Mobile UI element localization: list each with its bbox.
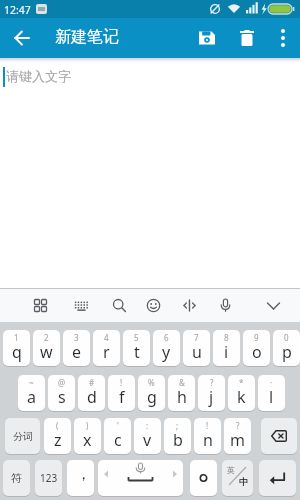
button[interactable]: 3	[63, 330, 90, 366]
button[interactable]	[140, 289, 166, 322]
button[interactable]: 1	[3, 330, 30, 366]
staticText: v	[143, 429, 152, 451]
button[interactable]: 4	[93, 330, 120, 366]
staticText: 5	[134, 332, 139, 343]
button[interactable]: 2	[33, 330, 60, 366]
staticText: 9	[254, 332, 259, 343]
staticText: o	[252, 341, 262, 363]
button[interactable]: %	[138, 375, 165, 411]
staticText: s	[58, 386, 66, 408]
button[interactable]: 8	[213, 330, 240, 366]
button[interactable]: 123	[35, 460, 62, 496]
staticText: *	[239, 377, 244, 388]
button[interactable]: 0	[273, 330, 300, 366]
staticText: @	[58, 377, 66, 388]
staticText: c	[114, 429, 122, 451]
button[interactable]: ?	[224, 418, 251, 454]
button[interactable]: ~	[18, 375, 45, 411]
button[interactable]: :	[134, 418, 161, 454]
staticText: 中	[239, 476, 248, 487]
button[interactable]: ，	[67, 460, 94, 496]
staticText: h	[177, 386, 187, 408]
button[interactable]: '	[104, 418, 131, 454]
staticText: x	[83, 429, 92, 451]
button[interactable]: #	[78, 375, 105, 411]
button[interactable]: ·	[258, 375, 285, 411]
staticText: w	[40, 341, 53, 363]
staticText: p	[282, 341, 292, 363]
staticText: z	[54, 429, 62, 451]
staticText: 12:47	[4, 3, 31, 17]
staticText: 符	[11, 471, 22, 485]
button[interactable]: (	[44, 418, 71, 454]
staticText: 6	[164, 332, 169, 343]
button[interactable]	[212, 289, 238, 322]
staticText: ;	[176, 420, 179, 431]
staticText: q	[12, 341, 22, 363]
staticText: ，	[76, 465, 91, 484]
button[interactable]	[267, 22, 299, 54]
staticText: n	[203, 429, 213, 451]
staticText: m	[230, 429, 245, 451]
staticText: f	[119, 386, 125, 408]
staticText: )	[86, 420, 89, 431]
button[interactable]: 英	[222, 460, 253, 496]
staticText: &	[179, 377, 185, 388]
button[interactable]	[259, 460, 296, 496]
staticText: 3	[74, 332, 79, 343]
staticText: 英	[227, 465, 235, 475]
staticText: i	[224, 341, 229, 363]
button[interactable]: *	[228, 375, 255, 411]
button[interactable]	[191, 22, 223, 54]
staticText: j	[209, 386, 214, 408]
staticText: #	[89, 377, 95, 388]
staticText: ?	[210, 377, 214, 388]
staticText: ?	[236, 420, 240, 431]
button[interactable]	[106, 289, 132, 322]
staticText: a	[27, 386, 36, 408]
staticText: :	[146, 420, 149, 431]
staticText: l	[269, 386, 274, 408]
staticText: ·	[270, 377, 273, 388]
staticText: ~	[29, 377, 34, 388]
button[interactable]: 符	[3, 460, 30, 496]
button[interactable]: 9	[243, 330, 270, 366]
staticText: 2	[44, 332, 49, 343]
staticText: r	[103, 341, 110, 363]
button[interactable]	[190, 460, 217, 496]
staticText: 1	[14, 332, 19, 343]
button[interactable]	[6, 22, 38, 54]
button[interactable]	[98, 460, 183, 496]
button[interactable]: ;	[164, 418, 191, 454]
button[interactable]	[231, 22, 263, 54]
staticText: e	[72, 341, 82, 363]
button[interactable]	[27, 289, 53, 322]
button[interactable]	[258, 289, 288, 322]
staticText: u	[192, 341, 202, 363]
button[interactable]: )	[74, 418, 101, 454]
staticText: g	[147, 386, 157, 408]
staticText: d	[87, 386, 97, 408]
staticText: !	[120, 377, 123, 388]
staticText: 7	[194, 332, 199, 343]
staticText: t	[134, 341, 140, 363]
button[interactable]: 6	[153, 330, 180, 366]
staticText: 分词	[13, 430, 33, 443]
staticText: 8	[224, 332, 229, 343]
button[interactable]	[261, 418, 297, 454]
staticText: (	[56, 420, 59, 431]
button[interactable]: !	[194, 418, 221, 454]
staticText: 4	[104, 332, 109, 343]
button[interactable]: !	[108, 375, 135, 411]
staticText: b	[173, 429, 183, 451]
staticText: y	[162, 341, 171, 363]
button[interactable]: ?	[198, 375, 225, 411]
button[interactable]	[68, 289, 94, 322]
button[interactable]: 7	[183, 330, 210, 366]
button[interactable]: @	[48, 375, 75, 411]
button[interactable]	[176, 289, 202, 322]
button[interactable]: &	[168, 375, 195, 411]
button[interactable]: 5	[123, 330, 150, 366]
staticText: !	[206, 420, 209, 431]
button[interactable]: 分词	[5, 418, 40, 454]
